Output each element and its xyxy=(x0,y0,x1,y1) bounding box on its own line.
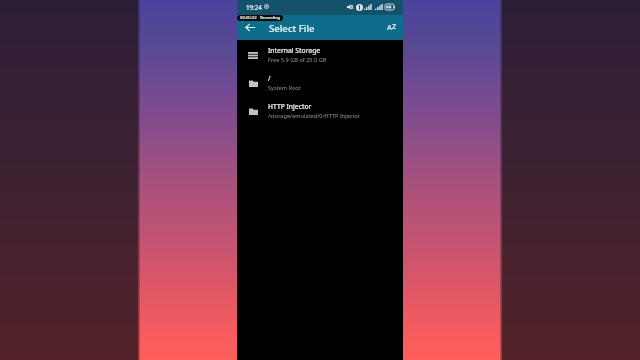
staticText: /storage/emulated/0/HTTP Injector xyxy=(268,112,361,120)
staticText: Z xyxy=(392,21,397,31)
staticText: HTTP Injector xyxy=(268,102,312,111)
button[interactable]: / xyxy=(237,69,403,97)
staticText: / xyxy=(268,74,271,83)
button[interactable]: HTTP Injector xyxy=(237,97,403,125)
button[interactable]: Sort A to Z xyxy=(381,15,403,40)
staticText: A xyxy=(387,22,392,32)
staticText: 19:24 xyxy=(246,3,262,11)
staticText: Free 5.9 GB of 25.0 GB xyxy=(268,56,327,64)
staticText: Select File xyxy=(269,22,315,35)
button[interactable]: Internal Storage xyxy=(237,41,403,69)
staticText: Internal Storage xyxy=(268,46,321,55)
button[interactable]: Back xyxy=(240,15,260,40)
staticText: 00:00:32 Recording xyxy=(240,15,281,21)
staticText: System Root xyxy=(268,84,301,92)
